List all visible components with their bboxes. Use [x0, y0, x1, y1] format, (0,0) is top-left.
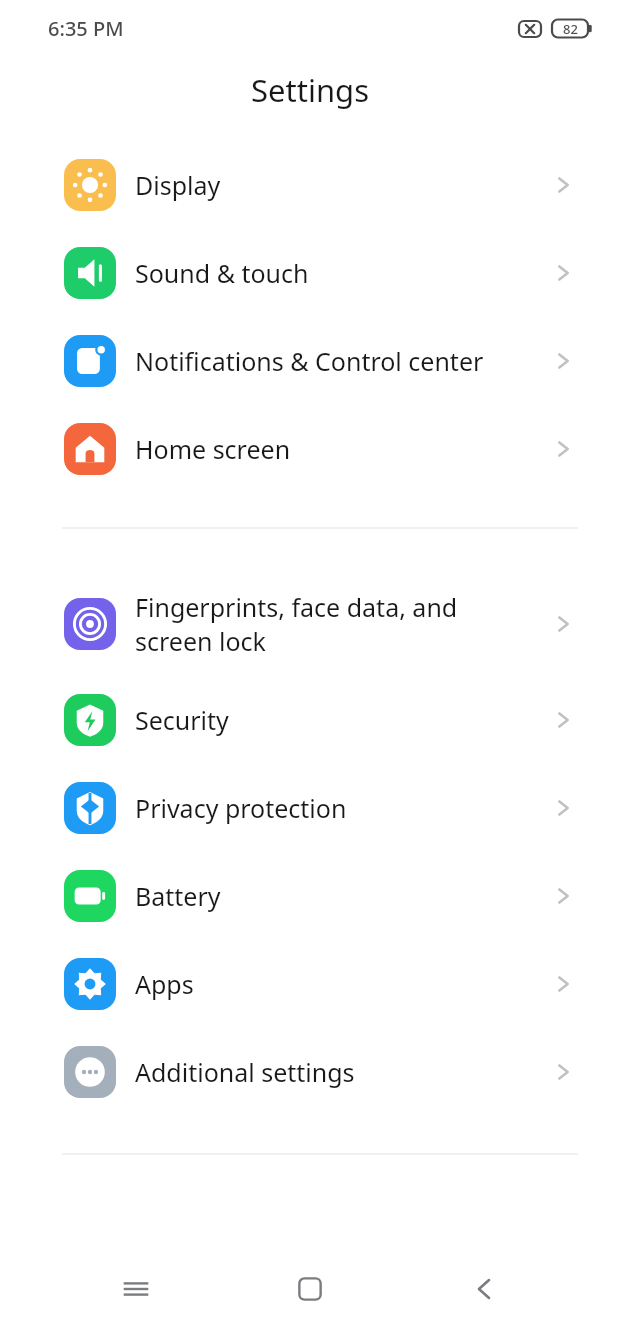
button[interactable]: Additional settings	[0, 1028, 620, 1116]
button[interactable]: Battery	[0, 852, 620, 940]
button[interactable]: Recent apps	[98, 1251, 174, 1327]
staticText: Display	[135, 168, 540, 202]
button[interactable]: Display	[0, 141, 620, 229]
staticText: Apps	[135, 967, 540, 1001]
staticText: Security	[135, 703, 540, 737]
button[interactable]: Home	[272, 1251, 348, 1327]
button[interactable]: Back	[446, 1251, 522, 1327]
button[interactable]: Notifications & Control center	[0, 317, 620, 405]
staticText: Fingerprints, face data, and screen lock	[135, 590, 540, 658]
staticText: Notifications & Control center	[135, 344, 540, 378]
staticText: Additional settings	[135, 1055, 540, 1089]
button[interactable]: Security	[0, 676, 620, 764]
staticText: 6:35 PM	[48, 15, 124, 42]
staticText: Settings	[251, 69, 369, 111]
staticText: Privacy protection	[135, 791, 540, 825]
button[interactable]: Sound & touch	[0, 229, 620, 317]
staticText: Battery	[135, 879, 540, 913]
staticText: Sound & touch	[135, 256, 540, 290]
staticText: 82	[563, 20, 578, 38]
button[interactable]: Apps	[0, 940, 620, 1028]
button[interactable]: Privacy protection	[0, 764, 620, 852]
button[interactable]: Home screen	[0, 405, 620, 493]
staticText: Home screen	[135, 432, 540, 466]
button[interactable]: Fingerprints, face data, and screen lock	[0, 572, 620, 676]
